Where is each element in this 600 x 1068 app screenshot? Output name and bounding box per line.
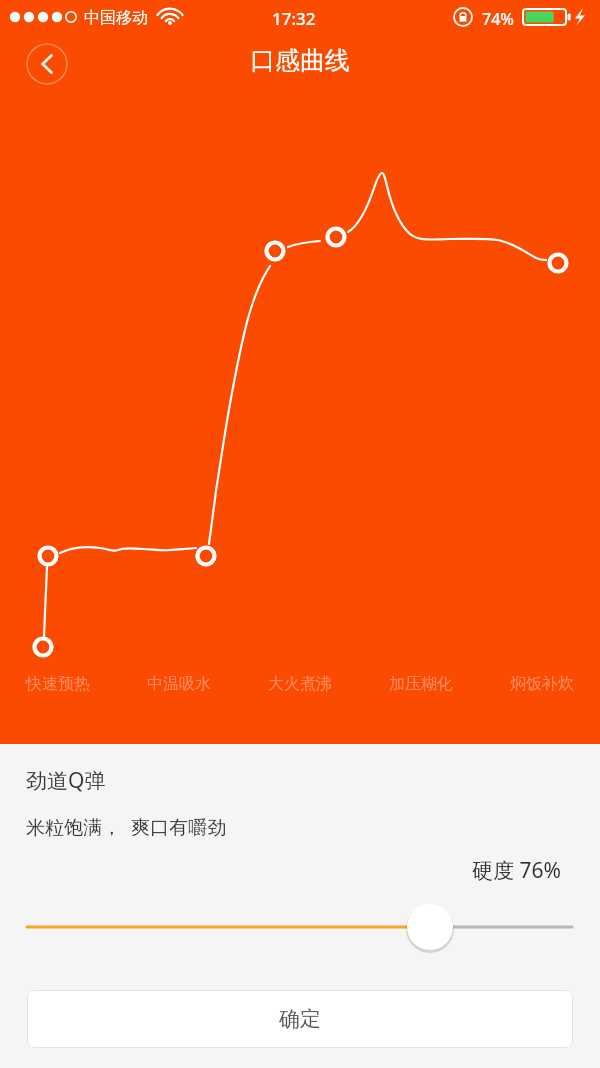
staticText: 确定 [279, 1006, 321, 1032]
staticText: 口感曲线 [250, 45, 350, 76]
staticText: 中温吸水 [147, 674, 211, 694]
staticText: 焖饭补炊 [510, 674, 574, 694]
button[interactable]: 确定 [27, 990, 573, 1048]
staticText: 大火煮沸 [268, 674, 332, 694]
button[interactable]: Back [26, 43, 68, 85]
staticText: 74% [482, 8, 514, 30]
staticText: 快速预热 [26, 674, 90, 694]
staticText: 劲道Q弹 [26, 766, 106, 795]
button[interactable] [0, 897, 600, 957]
staticText: 硬度 76% [472, 856, 561, 885]
staticText: 加压糊化 [389, 674, 453, 694]
staticText: 米粒饱满， 爽口有嚼劲 [26, 814, 226, 840]
staticText: 17:32 [272, 7, 316, 30]
staticText: 中国移动 [84, 8, 148, 28]
